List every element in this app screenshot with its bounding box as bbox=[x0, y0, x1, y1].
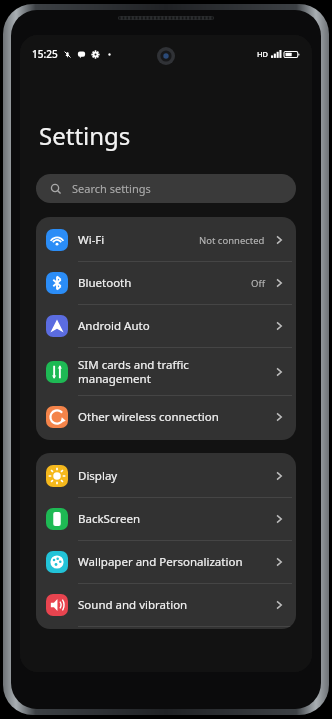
staticText: 15:25 bbox=[32, 47, 58, 61]
button[interactable]: Search settings bbox=[36, 174, 296, 203]
staticText: Display bbox=[78, 468, 272, 484]
staticText: SIM cards and traffic management bbox=[78, 357, 272, 386]
button[interactable]: Display bbox=[36, 455, 296, 497]
staticText: BackScreen bbox=[78, 511, 272, 527]
button[interactable]: BackScreen bbox=[36, 498, 296, 540]
staticText: Settings bbox=[39, 119, 131, 152]
staticText: Search settings bbox=[72, 181, 151, 196]
staticText: Other wireless connection bbox=[78, 409, 272, 425]
staticText: Off bbox=[251, 277, 265, 290]
staticText: Wallpaper and Personalization bbox=[78, 554, 272, 570]
button[interactable]: Other wireless connection bbox=[36, 396, 296, 438]
staticText: Sound and vibration bbox=[78, 597, 272, 613]
button[interactable]: Wallpaper and Personalization bbox=[36, 541, 296, 583]
button[interactable]: SIM cards and traffic management bbox=[36, 348, 296, 395]
staticText: Wi-Fi bbox=[78, 232, 199, 248]
button[interactable]: Wi-Fi bbox=[36, 219, 296, 261]
staticText: Bluetooth bbox=[78, 275, 251, 291]
button[interactable]: Android Auto bbox=[36, 305, 296, 347]
staticText: Not connected bbox=[199, 234, 265, 247]
button[interactable]: Bluetooth bbox=[36, 262, 296, 304]
staticText: Android Auto bbox=[78, 318, 272, 334]
staticText: HD bbox=[257, 49, 269, 59]
button[interactable]: Sound and vibration bbox=[36, 584, 296, 626]
